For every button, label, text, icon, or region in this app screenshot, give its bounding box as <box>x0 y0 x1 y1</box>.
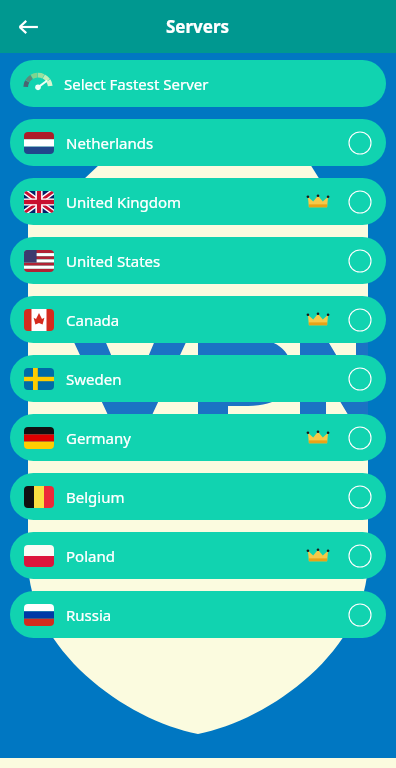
button[interactable]: United Kingdom <box>10 178 386 225</box>
button[interactable]: Netherlands <box>10 119 386 166</box>
staticText: Servers <box>166 15 230 38</box>
staticText: Belgium <box>66 487 348 507</box>
button[interactable]: Belgium <box>10 473 386 520</box>
button[interactable]: United States <box>10 237 386 284</box>
staticText: Sweden <box>66 369 348 389</box>
button[interactable]: Russia <box>10 591 386 638</box>
staticText: Poland <box>66 546 306 566</box>
button[interactable]: Back <box>8 7 48 47</box>
staticText: Netherlands <box>66 133 348 153</box>
button[interactable]: Select Fastest Server <box>10 60 386 107</box>
staticText: Select Fastest Server <box>64 74 209 94</box>
staticText: Russia <box>66 605 348 625</box>
staticText: Canada <box>66 310 306 330</box>
button[interactable]: Sweden <box>10 355 386 402</box>
button[interactable]: Poland <box>10 532 386 579</box>
button[interactable]: Canada <box>10 296 386 343</box>
staticText: Germany <box>66 428 306 448</box>
button[interactable]: Germany <box>10 414 386 461</box>
staticText: United Kingdom <box>66 192 306 212</box>
staticText: United States <box>66 251 348 271</box>
